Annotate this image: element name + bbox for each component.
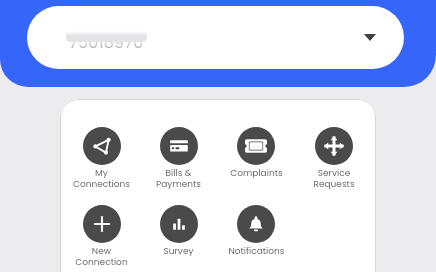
staticText: Service Requests	[313, 167, 355, 190]
other: Survey	[160, 205, 198, 243]
other: Bills & Payments	[160, 127, 198, 165]
staticText: Notifications	[228, 245, 285, 258]
staticText: Bills & Payments	[156, 167, 201, 190]
button[interactable]: New Connection	[63, 205, 140, 268]
staticText: New Connection	[75, 245, 128, 268]
other: My Connections	[83, 127, 121, 165]
other: Complaints	[237, 127, 275, 165]
button[interactable]: My Connections	[63, 127, 140, 190]
staticText: Survey	[163, 245, 194, 258]
button[interactable]: Service Requests	[295, 127, 373, 190]
button[interactable]: Notifications	[217, 205, 295, 258]
button[interactable]: Complaints	[217, 127, 295, 180]
staticText: 75018970	[69, 31, 144, 53]
button[interactable]: 75018970	[27, 6, 404, 69]
other: New Connection	[83, 205, 121, 243]
button[interactable]: Survey	[140, 205, 217, 258]
other: Service Requests	[315, 127, 353, 165]
other: Notifications	[237, 205, 275, 243]
staticText: Complaints	[230, 167, 283, 180]
staticText: My Connections	[73, 167, 130, 190]
button[interactable]: Bills & Payments	[140, 127, 217, 190]
